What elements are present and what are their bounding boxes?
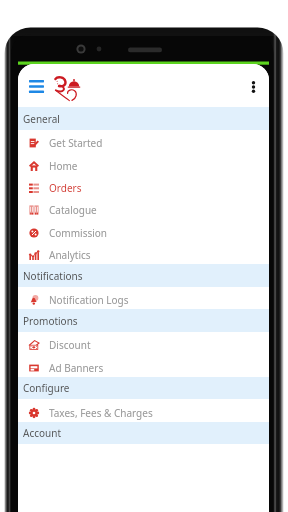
staticText: Configure xyxy=(23,381,70,395)
staticText: Ad Banners xyxy=(49,361,104,375)
staticText: General xyxy=(23,112,60,126)
button[interactable]: Commission xyxy=(18,219,269,242)
staticText: Account xyxy=(23,426,62,440)
staticText: Analytics xyxy=(49,248,91,262)
button[interactable]: Notification Logs xyxy=(18,287,269,309)
button[interactable]: Orders xyxy=(18,175,269,197)
staticText: Notifications xyxy=(23,269,83,283)
button[interactable]: Discount xyxy=(18,332,269,354)
button[interactable]: Ad Banners xyxy=(18,354,269,377)
button[interactable]: Taxes, Fees & Charges xyxy=(18,399,269,422)
staticText: Get Started xyxy=(49,136,103,150)
staticText: Promotions xyxy=(23,314,78,328)
staticText: Discount xyxy=(49,338,91,352)
button[interactable]: More options xyxy=(240,74,266,100)
button[interactable]: Get Started xyxy=(18,130,269,152)
staticText: Notification Logs xyxy=(49,293,129,307)
button[interactable]: Analytics xyxy=(18,242,269,264)
staticText: Taxes, Fees & Charges xyxy=(49,406,153,420)
staticText: Commission xyxy=(49,226,108,240)
staticText: Orders xyxy=(49,181,82,195)
button[interactable]: Home xyxy=(18,152,269,175)
staticText: Home xyxy=(49,159,78,173)
staticText: Catalogue xyxy=(49,203,97,217)
button[interactable]: Catalogue xyxy=(18,197,269,219)
button[interactable]: Open navigation menu xyxy=(23,73,50,100)
